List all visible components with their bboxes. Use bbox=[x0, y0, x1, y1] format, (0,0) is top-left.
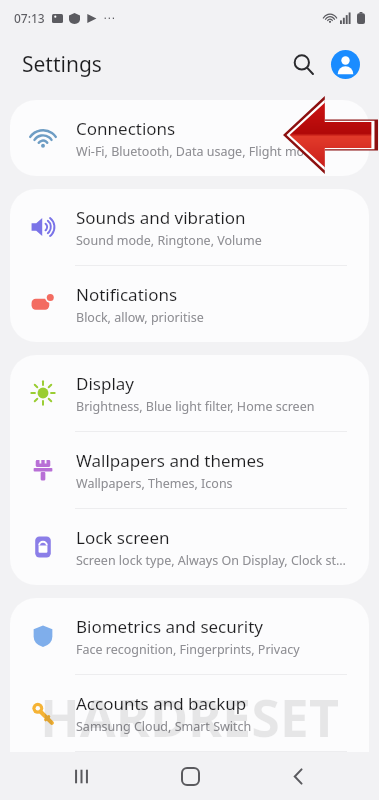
staticText: Biometrics and security bbox=[76, 615, 263, 638]
staticText: ⋯ bbox=[103, 11, 115, 25]
staticText: Wallpapers and themes bbox=[76, 449, 265, 472]
button[interactable]: Biometrics and security bbox=[10, 598, 369, 674]
staticText: Samsung Cloud, Smart Switch bbox=[76, 718, 252, 735]
staticText: Accounts and backup bbox=[76, 692, 247, 715]
staticText: 07:13 bbox=[14, 10, 45, 26]
staticText: Notifications bbox=[76, 283, 178, 306]
staticText: Face recognition, Fingerprints, Privacy bbox=[76, 641, 300, 658]
button[interactable]: Sounds and vibration bbox=[10, 189, 369, 265]
button[interactable]: Google bbox=[10, 752, 369, 800]
button[interactable]: Display bbox=[10, 355, 369, 431]
staticText: Settings bbox=[22, 50, 102, 79]
button[interactable]: Back bbox=[270, 752, 326, 800]
staticText: Google settings bbox=[76, 781, 169, 798]
staticText: Wi-Fi, Bluetooth, Data usage, Flight mod… bbox=[76, 143, 319, 160]
button[interactable]: Lock screen bbox=[10, 509, 369, 585]
staticText: Lock screen bbox=[76, 526, 170, 549]
button[interactable]: Account bbox=[325, 44, 365, 84]
staticText: Brightness, Blue light filter, Home scre… bbox=[76, 398, 315, 415]
staticText: Wallpapers, Themes, Icons bbox=[76, 475, 233, 492]
staticText: Block, allow, prioritise bbox=[76, 309, 204, 326]
staticText: Sound mode, Ringtone, Volume bbox=[76, 232, 262, 249]
button[interactable]: Recents bbox=[53, 752, 109, 800]
button[interactable]: Notifications bbox=[10, 266, 369, 342]
button[interactable]: Connections bbox=[10, 100, 369, 176]
button[interactable]: Wallpapers and themes bbox=[10, 432, 369, 508]
button[interactable]: Accounts and backup bbox=[10, 675, 369, 751]
staticText: Google bbox=[76, 755, 134, 778]
staticText: Sounds and vibration bbox=[76, 206, 246, 229]
staticText: Screen lock type, Always On Display, Clo… bbox=[76, 552, 351, 569]
staticText: Connections bbox=[76, 117, 176, 140]
staticText: Display bbox=[76, 372, 134, 395]
staticText: HARDRESET bbox=[40, 681, 339, 752]
button[interactable]: Home bbox=[162, 752, 218, 800]
button[interactable]: Search bbox=[283, 44, 323, 84]
